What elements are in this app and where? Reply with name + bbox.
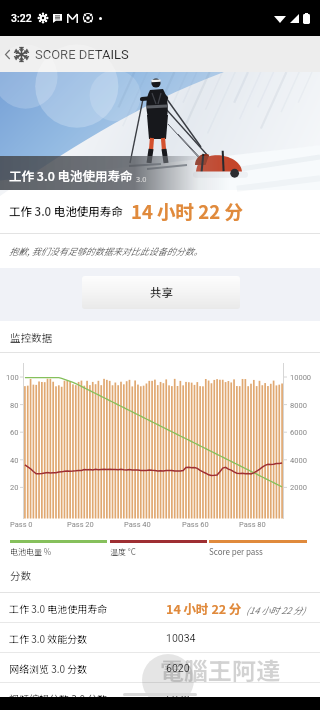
staticText: 视频编辑分数 3.0 分数 (9, 691, 108, 705)
button[interactable]: 视频编辑分数 3.0 分数 (0, 683, 320, 710)
staticText: 抱歉, 我们没有足够的数据来对比此设备的分数。 (9, 245, 203, 258)
staticText: 网络浏览 3.0 分数 (9, 661, 88, 675)
staticText: 6020 (166, 662, 190, 674)
staticText: 14 小时 22 分 (131, 198, 243, 225)
staticText: 20 (10, 483, 19, 492)
staticText: 共享 (150, 284, 173, 301)
staticText: Score per pass (209, 546, 263, 558)
staticText: (14 小时 22 分) (246, 604, 306, 617)
staticText: 电池电量 % (10, 546, 52, 558)
button[interactable]: Back (0, 36, 14, 72)
staticText: 14 小时 22 分 (166, 599, 242, 617)
staticText: 10034 (166, 632, 196, 644)
staticText: 電腦王阿達 (160, 652, 280, 687)
staticText: Pass 60 (182, 520, 209, 529)
staticText: 工作 3.0 电池使用寿命 (9, 601, 108, 615)
staticText: SCORE DETAILS (35, 47, 129, 62)
button[interactable]: 共享 (82, 276, 240, 309)
button[interactable]: 网络浏览 3.0 分数 (0, 653, 320, 682)
staticText: 100 (6, 373, 19, 382)
staticText: 温度 °C (110, 546, 136, 558)
staticText: 工作 3.0 电池使用寿命 (9, 166, 133, 184)
staticText: 2000 (290, 483, 307, 492)
staticText: 监控数据 (10, 330, 52, 345)
staticText: 3.0 (136, 173, 147, 184)
staticText: 3:22 (11, 12, 32, 24)
staticText: 8000 (290, 401, 307, 410)
staticText: Pass 40 (124, 520, 151, 529)
staticText: 60 (10, 428, 19, 437)
staticText: 5038 (166, 692, 190, 704)
staticText: Pass 0 (10, 520, 33, 529)
staticText: 6000 (290, 428, 307, 437)
staticText: Pass 20 (67, 520, 94, 529)
staticText: 4000 (290, 456, 307, 465)
staticText: 工作 3.0 效能分数 (9, 631, 88, 645)
staticText: Pass 80 (239, 520, 266, 529)
button[interactable]: 工作 3.0 电池使用寿命 (0, 593, 320, 622)
staticText: 40 (10, 456, 19, 465)
staticText: 10000 (290, 373, 312, 382)
button[interactable]: 工作 3.0 效能分数 (0, 623, 320, 652)
staticText: 工作 3.0 电池使用寿命 (9, 203, 123, 220)
staticText: 分数 (10, 568, 31, 583)
staticText: 80 (10, 401, 19, 410)
